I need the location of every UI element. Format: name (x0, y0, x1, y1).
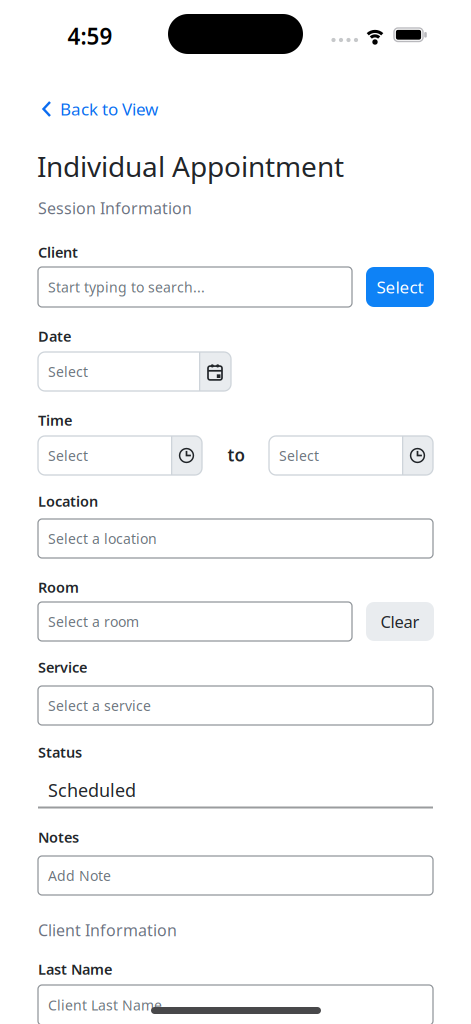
staticText: Service (38, 657, 87, 677)
button[interactable]: Select a location (38, 519, 433, 558)
staticText: Select (48, 362, 88, 381)
staticText: Status (38, 742, 82, 762)
staticText: Select a room (48, 612, 139, 631)
staticText: Notes (38, 827, 79, 847)
staticText: Add Note (48, 866, 111, 885)
staticText: Select (48, 446, 88, 465)
staticText: Select (376, 275, 423, 299)
button[interactable]: Start typing to search... (38, 267, 352, 307)
staticText: Time (38, 410, 72, 430)
staticText: Location (38, 491, 98, 511)
button[interactable]: Select a room (38, 602, 352, 641)
staticText: Clear (380, 610, 419, 633)
button[interactable]: Back to View (38, 97, 158, 121)
staticText: to (227, 443, 244, 467)
staticText: Start typing to search... (48, 277, 205, 297)
button[interactable]: Select a service (38, 686, 433, 725)
staticText: Session Information (38, 197, 192, 219)
button[interactable]: Select date (38, 352, 231, 391)
button[interactable]: Select start time (38, 436, 202, 475)
staticText: Client Information (38, 919, 177, 941)
staticText: Client Last Name (48, 995, 162, 1015)
button[interactable]: Client Last Name (38, 985, 433, 1024)
staticText: Scheduled (48, 778, 136, 802)
button[interactable]: Select (366, 267, 434, 307)
staticText: Last Name (38, 959, 112, 979)
staticText: Select a location (48, 529, 157, 548)
staticText: 4:59 (67, 21, 112, 51)
button[interactable]: Add Note (38, 856, 433, 895)
staticText: Back to View (60, 97, 158, 121)
staticText: Date (38, 326, 71, 346)
staticText: Room (38, 577, 79, 597)
button[interactable]: Select end time (269, 436, 433, 475)
staticText: Client (38, 242, 78, 262)
staticText: Select (279, 446, 319, 465)
staticText: Select a service (48, 696, 151, 715)
button[interactable]: Clear (366, 602, 434, 641)
staticText: Individual Appointment (37, 147, 344, 185)
